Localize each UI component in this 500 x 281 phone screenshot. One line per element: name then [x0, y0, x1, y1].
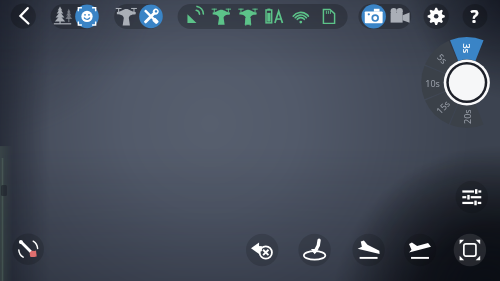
button[interactable]: Auto landing	[352, 234, 384, 266]
button[interactable]: Scene mode	[49, 4, 74, 29]
button[interactable]: Land here	[298, 234, 330, 266]
button[interactable]: Control sticks	[12, 233, 44, 265]
button[interactable]: Take off	[404, 234, 436, 266]
button[interactable]: Settings	[424, 4, 449, 29]
button[interactable]: Video mode	[387, 4, 412, 29]
button[interactable]: Aircraft	[114, 4, 139, 29]
button[interactable]: Help	[463, 4, 488, 29]
button[interactable]: Aircraft status	[178, 4, 348, 29]
button[interactable]: Shutter	[444, 59, 490, 105]
button[interactable]: Camera adjustments	[456, 181, 488, 213]
button[interactable]: Face detection	[75, 4, 100, 29]
button[interactable]: Cancel return to home	[246, 234, 278, 266]
button[interactable]: Settings tools	[139, 4, 164, 29]
button[interactable]: Back	[11, 4, 36, 29]
button[interactable]: Photo mode	[361, 4, 386, 29]
button[interactable]: Full screen	[454, 234, 486, 266]
